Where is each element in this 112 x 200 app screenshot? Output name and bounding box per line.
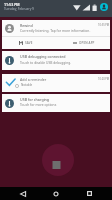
- staticText: 11:53 PM: [4, 2, 20, 7]
- button[interactable]: OPEN APP: [73, 39, 95, 46]
- staticText: OPEN APP: [79, 41, 95, 45]
- button[interactable]: USB for charging: [2, 94, 110, 112]
- staticText: USB for charging: [20, 97, 50, 102]
- staticText: Add a reminder: [20, 77, 47, 82]
- staticText: 10:20 PM: [98, 77, 110, 81]
- button[interactable]: Rewind: [2, 20, 110, 49]
- staticText: Tuesday, February 9: [4, 7, 34, 11]
- staticText: Touch for more options: [20, 102, 57, 106]
- staticText: USB debugging connected: [20, 54, 66, 59]
- button[interactable]: Add a reminder: [2, 74, 110, 92]
- button[interactable]: Back: [13, 187, 33, 200]
- staticText: Rewind: [20, 23, 33, 28]
- button[interactable]: Recent apps: [79, 187, 99, 200]
- staticText: Currently listening. Tap for more inform…: [20, 28, 91, 32]
- staticText: Touch to disable USB debugging.: [20, 60, 72, 64]
- staticText: Notable: [21, 83, 33, 87]
- button[interactable]: SAVE: [19, 39, 33, 46]
- button[interactable]: Home: [46, 187, 66, 200]
- staticText: SAVE: [25, 41, 33, 45]
- staticText: 10:55 PM: [98, 23, 110, 27]
- button[interactable]: USB debugging connected: [2, 51, 110, 70]
